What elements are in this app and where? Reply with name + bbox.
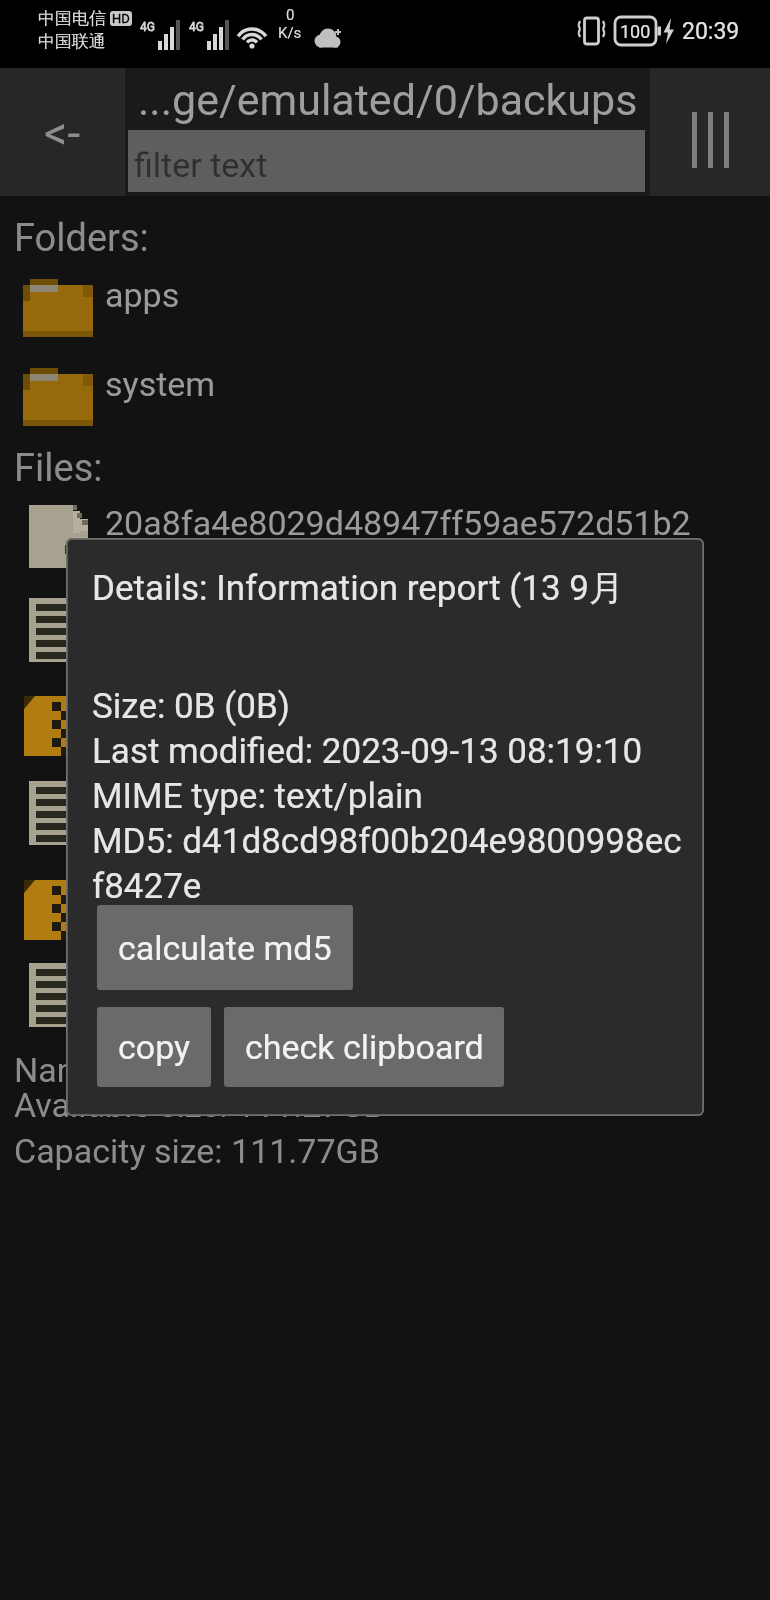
staticText: filter text: [134, 145, 268, 185]
button[interactable]: [24, 694, 80, 756]
staticText: 中国电信: [38, 8, 106, 29]
staticText: Available size: 111.27GB: [14, 1085, 385, 1125]
staticText: calculate md5: [118, 928, 332, 968]
staticText: MD5: d41d8cd98f00b204e9800998ec: [92, 821, 682, 862]
staticText: HD: [112, 11, 130, 26]
staticText: Folders:: [14, 216, 149, 261]
button[interactable]: <-: [0, 68, 125, 196]
staticText: 100: [620, 21, 651, 42]
staticText: Details: Information report (13 9月: [92, 566, 624, 610]
staticText: K/s: [278, 24, 302, 42]
staticText: 20a8fa4e8029d48947ff59ae572d51b2: [105, 503, 691, 543]
button[interactable]: filter text: [128, 130, 645, 192]
staticText: check clipboard: [245, 1027, 484, 1067]
button[interactable]: copy: [97, 1007, 211, 1087]
button[interactable]: [650, 68, 770, 196]
staticText: Last modified: 2023-09-13 08:19:10: [92, 731, 643, 772]
button[interactable]: apps: [23, 279, 180, 337]
staticText: 20:39: [682, 18, 740, 45]
staticText: f8427e: [92, 866, 202, 907]
staticText: Size: 0B (0B): [92, 686, 290, 727]
button[interactable]: [29, 781, 87, 845]
staticText: 4G: [140, 20, 155, 34]
button[interactable]: [29, 598, 87, 662]
button[interactable]: check clipboard: [224, 1007, 504, 1087]
staticText: copy: [118, 1027, 191, 1067]
staticText: MIME type: text/plain: [92, 776, 423, 817]
button[interactable]: system: [23, 368, 216, 426]
staticText: 0: [286, 6, 295, 24]
staticText: 中国联通: [38, 31, 106, 52]
staticText: Capacity size: 111.77GB: [14, 1131, 380, 1171]
button[interactable]: 20a8fa4e8029d48947ff59ae572d51b2: [29, 505, 691, 568]
button[interactable]: [24, 878, 80, 940]
staticText: Name: 20a8fa4e8029d489: [14, 1050, 418, 1090]
staticText: 4G: [189, 20, 204, 34]
staticText: ...ge/emulated/0/backups: [138, 75, 638, 125]
staticText: <-: [44, 106, 81, 160]
button[interactable]: [29, 963, 87, 1027]
staticText: system: [105, 364, 216, 404]
staticText: apps: [105, 275, 180, 315]
staticText: Files:: [14, 446, 103, 491]
button[interactable]: calculate md5: [97, 905, 353, 990]
